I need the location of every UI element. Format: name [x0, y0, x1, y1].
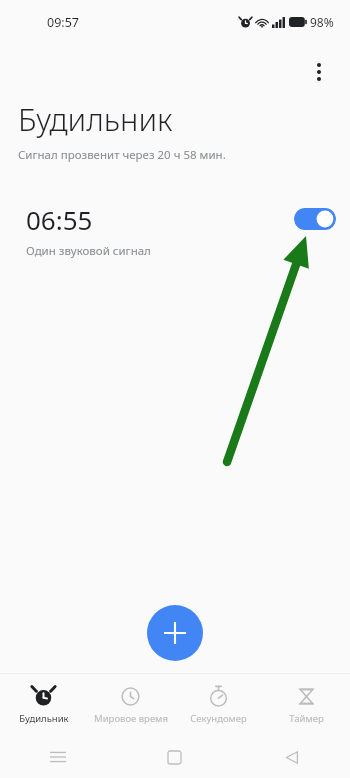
button[interactable]: Back [233, 736, 350, 778]
button[interactable]: 06:55 [0, 190, 350, 270]
button[interactable]: More options [299, 52, 339, 92]
button[interactable]: Секундомер [174, 674, 262, 736]
button[interactable]: Recent apps [0, 736, 116, 778]
staticText: Один звуковой сигнал [26, 243, 151, 259]
button[interactable]: Alarm enabled [294, 207, 336, 231]
staticText: Будильник [18, 98, 173, 140]
staticText: Секундомер [190, 712, 247, 725]
staticText: Таймер [289, 712, 324, 725]
staticText: Сигнал прозвенит через 20 ч 58 мин. [18, 147, 226, 163]
button[interactable]: Мировое время [87, 674, 174, 736]
staticText: 09:57 [47, 14, 79, 31]
button[interactable]: Add alarm [147, 605, 203, 661]
button[interactable]: Home [116, 736, 233, 778]
button[interactable]: Будильник [0, 674, 87, 736]
staticText: Будильник [19, 712, 69, 725]
button[interactable]: Таймер [262, 674, 350, 736]
staticText: 06:55 [26, 202, 93, 237]
staticText: 98% [310, 14, 334, 30]
staticText: Мировое время [94, 712, 168, 725]
